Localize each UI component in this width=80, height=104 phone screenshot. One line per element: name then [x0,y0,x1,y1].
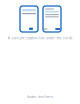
staticText: A sample caption line under the cards [7,35,72,40]
staticText: footer text here [27,94,53,99]
